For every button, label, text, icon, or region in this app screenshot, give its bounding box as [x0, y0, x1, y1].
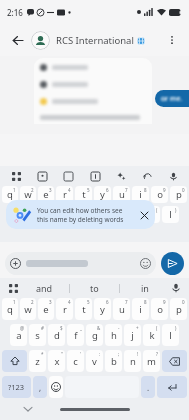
button[interactable]: 0: [170, 298, 187, 320]
staticText: @: [20, 207, 25, 213]
button[interactable]: [5, 252, 156, 275]
button[interactable]: Emoji: [49, 376, 63, 398]
button[interactable]: _: [67, 324, 84, 346]
button[interactable]: ,: [33, 376, 47, 398]
button[interactable]: :: [86, 350, 103, 372]
staticText: r: [63, 303, 67, 316]
button[interactable]: #: [29, 324, 46, 346]
button[interactable]: @: [10, 206, 27, 223]
button[interactable]: 4: [56, 298, 73, 320]
button[interactable]: Voice input: [169, 281, 183, 295]
button[interactable]: &: [86, 324, 103, 346]
button[interactable]: 9: [151, 186, 168, 203]
button[interactable]: Keyboard tool: [113, 168, 129, 184]
staticText: ,: [39, 382, 42, 393]
button[interactable]: Send: [161, 252, 184, 275]
button[interactable]: 7: [113, 186, 130, 203]
button[interactable]: You can edit how others see this name by…: [6, 200, 155, 229]
staticText: y: [100, 303, 105, 316]
button[interactable]: 8: [132, 186, 149, 203]
button[interactable]: Back: [6, 29, 28, 51]
button[interactable]: #: [29, 206, 46, 223]
button[interactable]: Keyboard tool: [87, 168, 103, 184]
button[interactable]: +: [124, 324, 141, 346]
button[interactable]: +: [124, 206, 141, 223]
button[interactable]: *: [29, 350, 46, 372]
button[interactable]: 0: [170, 186, 187, 203]
button[interactable]: 4: [56, 186, 73, 203]
staticText: .: [147, 382, 150, 393]
button[interactable]: (: [143, 324, 160, 346]
button[interactable]: ;: [105, 350, 122, 372]
staticText: @: [20, 325, 25, 331]
button[interactable]: More options: [161, 29, 183, 51]
button[interactable]: Keyboard tool: [165, 168, 181, 184]
button[interactable]: RCS International: [31, 31, 161, 50]
staticText: $: [60, 325, 63, 331]
staticText: f: [74, 208, 78, 221]
button[interactable]: .: [141, 376, 155, 398]
button[interactable]: 1: [2, 298, 18, 320]
button[interactable]: 5: [75, 298, 92, 320]
staticText: 2: [31, 299, 34, 305]
button[interactable]: 3: [38, 186, 54, 203]
staticText: a: [16, 208, 22, 221]
button[interactable]: 1: [2, 186, 18, 203]
button[interactable]: 8: [132, 298, 149, 320]
button[interactable]: Keyboard menu: [6, 281, 20, 295]
staticText: p: [176, 188, 182, 201]
staticText: o: [157, 303, 163, 316]
button[interactable]: ?123: [2, 376, 31, 398]
button[interactable]: and: [20, 278, 69, 298]
button[interactable]: -: [105, 206, 122, 223]
button[interactable]: Enter: [157, 376, 187, 398]
button[interactable]: 2: [20, 186, 36, 203]
button[interactable]: to: [70, 278, 119, 298]
button[interactable]: _: [67, 206, 84, 223]
button[interactable]: in: [120, 278, 169, 298]
button[interactable]: ': [67, 350, 84, 372]
button[interactable]: Keyboard tool: [34, 168, 50, 184]
staticText: 3: [49, 187, 52, 193]
button[interactable]: Keyboard tool: [8, 168, 24, 184]
staticText: and: [36, 282, 53, 294]
button[interactable]: 5: [75, 186, 92, 203]
staticText: y: [100, 188, 105, 201]
button[interactable]: 6: [94, 186, 111, 203]
button[interactable]: ): [162, 324, 179, 346]
button[interactable]: 9: [151, 298, 168, 320]
staticText: 5: [87, 187, 90, 193]
button[interactable]: &: [86, 206, 103, 223]
staticText: -: [118, 207, 120, 213]
button[interactable]: Dismiss: [135, 206, 153, 224]
button[interactable]: Key: [162, 350, 187, 372]
staticText: s: [35, 208, 40, 221]
button[interactable]: ?: [143, 350, 160, 372]
staticText: 0: [182, 299, 185, 305]
staticText: l: [169, 329, 172, 342]
staticText: e: [43, 188, 49, 201]
button[interactable]: @: [10, 324, 27, 346]
button[interactable]: 2: [20, 298, 36, 320]
staticText: 3: [49, 299, 52, 305]
button[interactable]: $: [48, 324, 65, 346]
button[interactable]: ): [162, 206, 179, 223]
button[interactable]: 3: [38, 298, 54, 320]
button[interactable]: Key: [2, 350, 27, 372]
button[interactable]: 6: [94, 298, 111, 320]
button[interactable]: or me.: [155, 90, 189, 107]
button[interactable]: Keyboard tool: [139, 168, 155, 184]
button[interactable]: $: [48, 206, 65, 223]
staticText: ?: [156, 351, 158, 357]
button[interactable]: Hide keyboard: [22, 403, 34, 415]
button[interactable]: -: [105, 324, 122, 346]
staticText: q: [7, 188, 13, 201]
staticText: ?123: [8, 382, 25, 392]
button[interactable]: (: [143, 206, 160, 223]
button[interactable]: ": [48, 350, 65, 372]
button[interactable]: !: [124, 350, 141, 372]
staticText: &: [97, 207, 101, 213]
button[interactable]: Keyboard tool: [60, 168, 76, 184]
button[interactable]: 7: [113, 298, 130, 320]
